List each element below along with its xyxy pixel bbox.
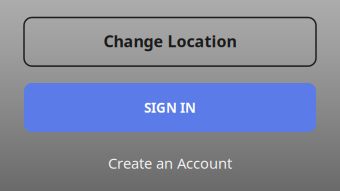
staticText: SIGN IN xyxy=(144,99,196,116)
staticText: Change Location xyxy=(103,30,236,52)
staticText: Create an Account xyxy=(108,153,232,173)
button[interactable]: Change Location xyxy=(24,17,316,66)
button[interactable]: SIGN IN xyxy=(24,83,316,132)
button[interactable]: Create an Account xyxy=(108,153,232,173)
